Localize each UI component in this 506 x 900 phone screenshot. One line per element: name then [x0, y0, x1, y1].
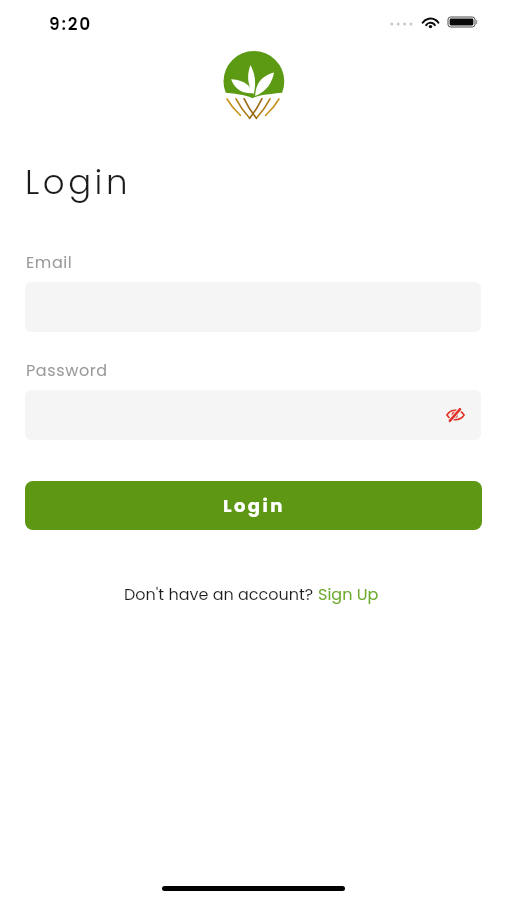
staticText: Don't have an account?: [124, 583, 318, 605]
staticText: Login: [223, 493, 285, 518]
staticText: Login: [25, 158, 131, 206]
button[interactable]: Sign Up: [318, 583, 379, 605]
button[interactable]: Login: [25, 481, 482, 530]
button[interactable]: Show password: [441, 401, 469, 429]
staticText: Sign Up: [318, 583, 379, 605]
staticText: Password: [26, 359, 108, 381]
staticText: 9:20: [49, 12, 93, 36]
button[interactable]: Show password: [25, 390, 481, 440]
staticText: Email: [26, 251, 73, 273]
